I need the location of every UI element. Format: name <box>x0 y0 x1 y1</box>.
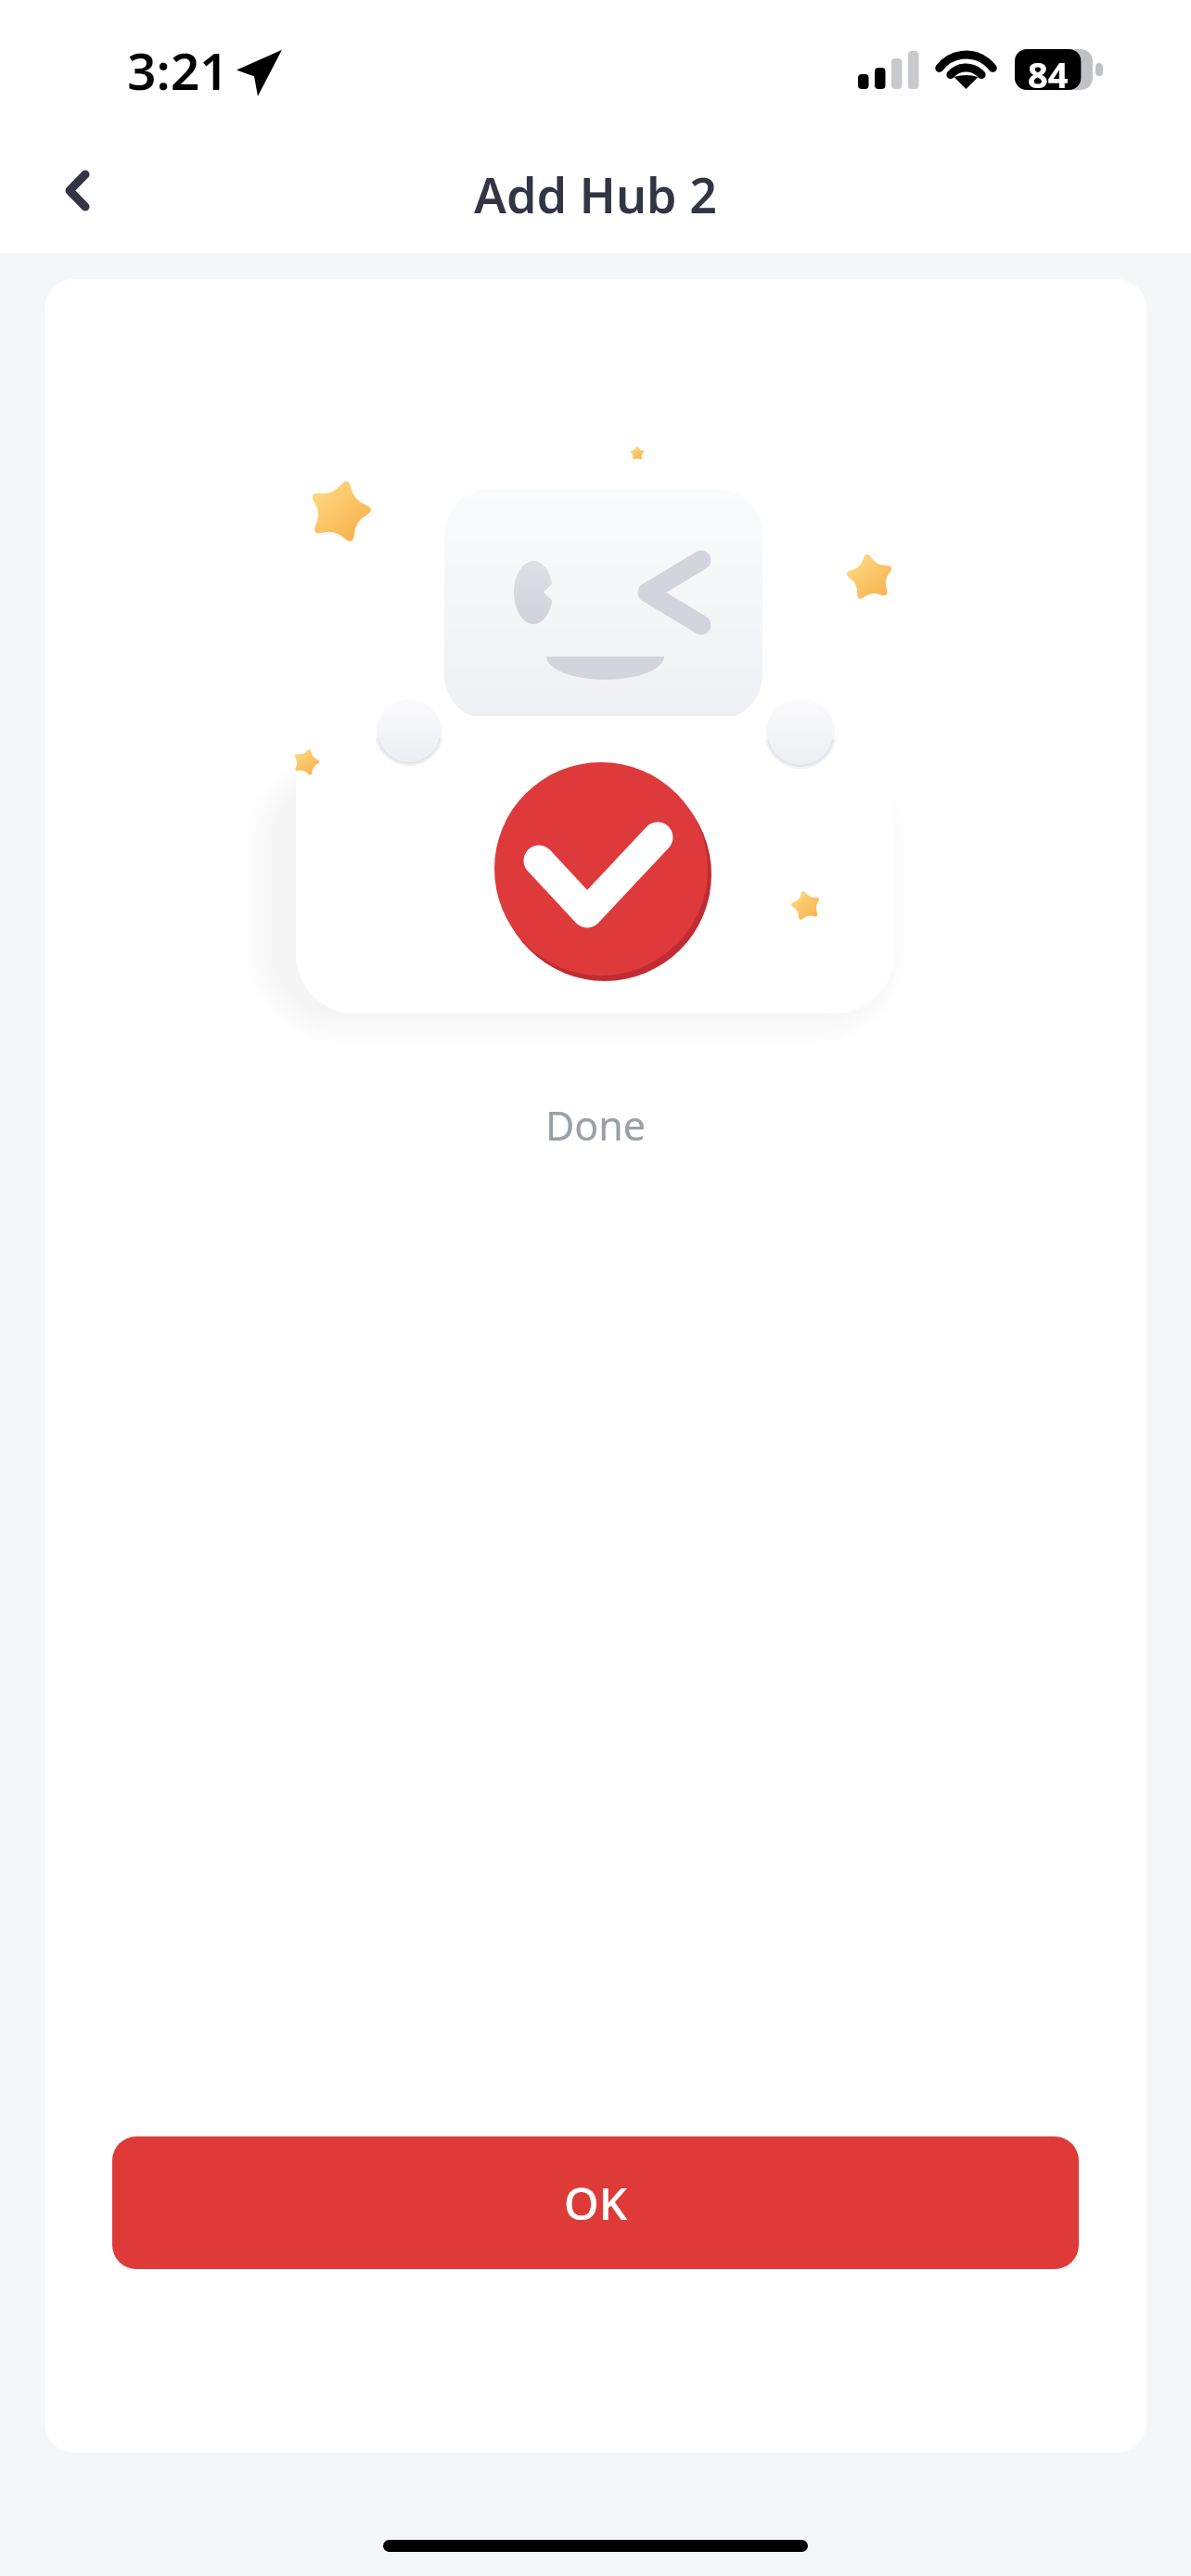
staticText: Done <box>0 1098 1191 1153</box>
staticText: 84 <box>1028 50 1069 98</box>
staticText: 3:21 <box>127 35 229 105</box>
button[interactable]: Back <box>38 149 127 238</box>
staticText: OK <box>564 2173 627 2233</box>
staticText: Add Hub 2 <box>474 161 717 227</box>
button[interactable]: OK <box>112 2136 1079 2269</box>
